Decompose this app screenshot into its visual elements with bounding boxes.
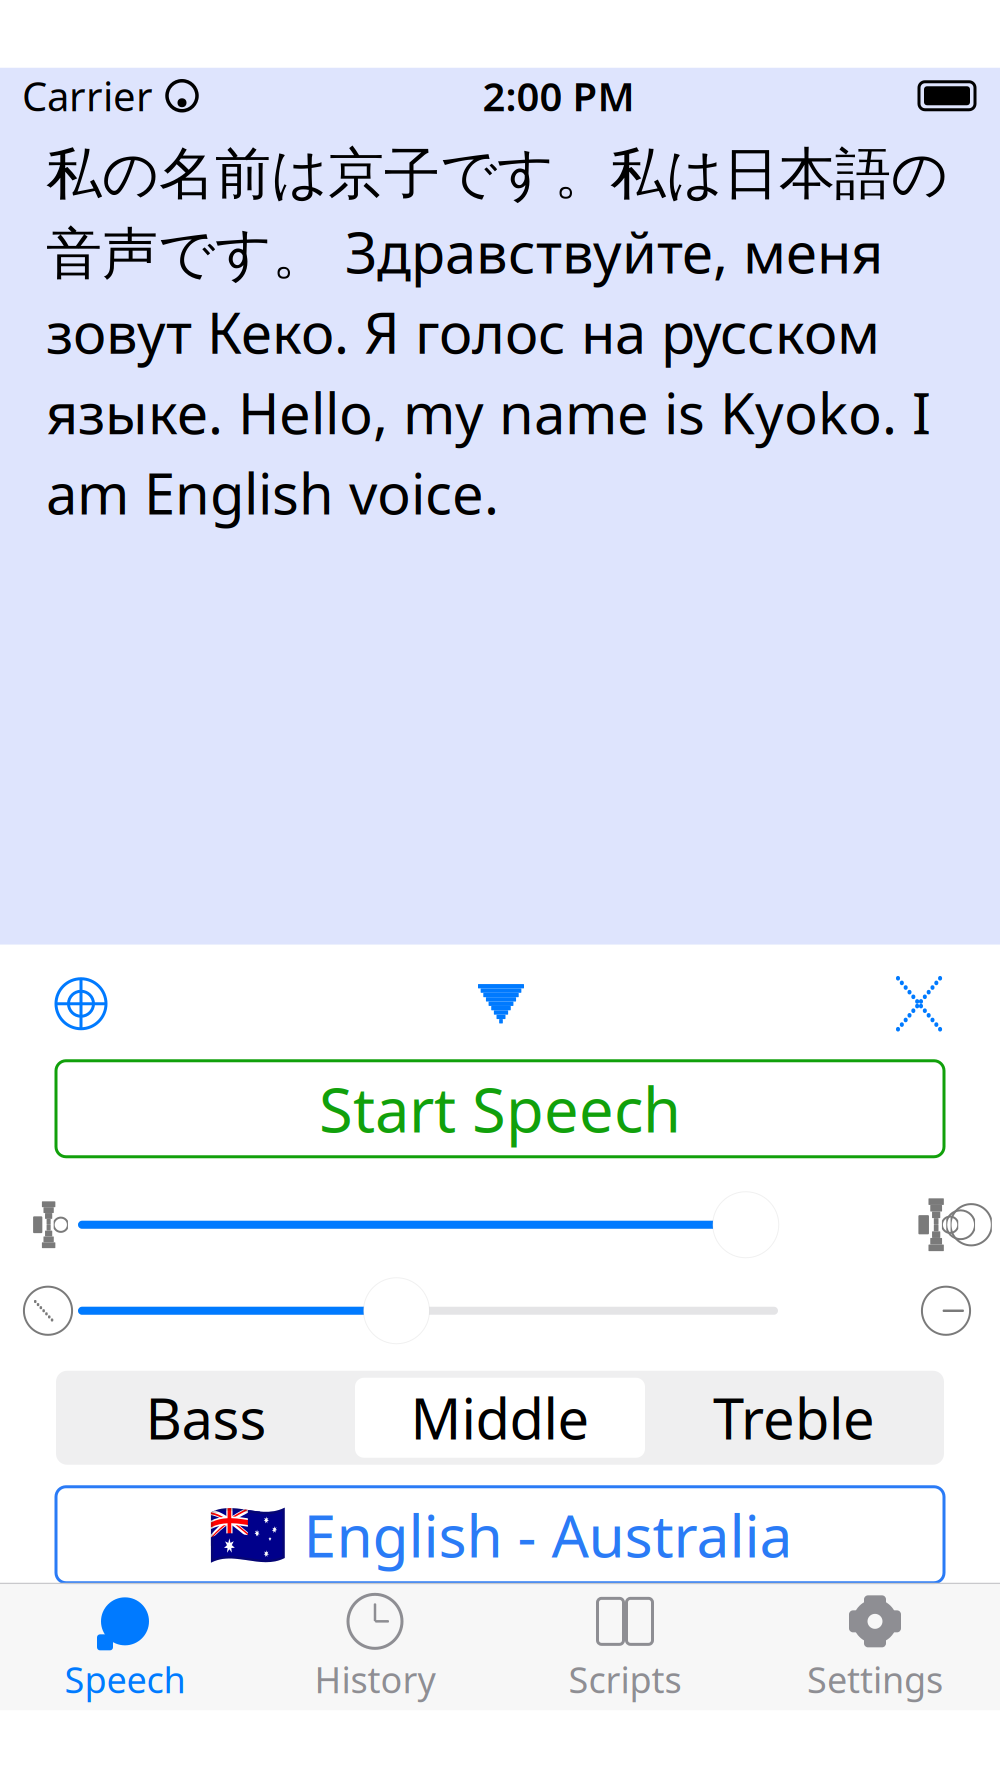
- staticText: Settings: [807, 1655, 943, 1703]
- button[interactable]: Bass: [59, 1374, 353, 1462]
- staticText: 2:00 PM: [482, 69, 634, 122]
- button[interactable]: Middle: [353, 1378, 647, 1458]
- staticText: Carrier: [22, 69, 153, 122]
- button[interactable]: Close: [880, 971, 958, 1037]
- button[interactable]: Settings: [750, 1581, 1000, 1713]
- button[interactable]: History: [250, 1581, 500, 1713]
- staticText: History: [314, 1655, 435, 1703]
- button[interactable]: Start Speech: [56, 1061, 944, 1157]
- button[interactable]: Speech: [0, 1581, 250, 1713]
- staticText: Bass: [145, 1381, 266, 1455]
- button[interactable]: Scripts: [500, 1581, 750, 1713]
- staticText: 🇦🇺: [207, 1498, 287, 1571]
- button[interactable]: Languages: [40, 969, 122, 1039]
- staticText: Start Speech: [319, 1068, 681, 1149]
- staticText: Treble: [713, 1381, 875, 1455]
- staticText: Middle: [410, 1381, 589, 1455]
- button[interactable]: Treble: [647, 1374, 941, 1462]
- button[interactable]: 🇦🇺: [56, 1487, 944, 1583]
- staticText: Speech: [64, 1655, 185, 1703]
- button[interactable]: Collapse panel: [454, 971, 548, 1037]
- staticText: 私の名前は京子です。私は日本語の音声です。 Здравствуйте, меня…: [46, 140, 948, 530]
- staticText: Scripts: [568, 1655, 681, 1703]
- staticText: English - Australia: [303, 1496, 792, 1574]
